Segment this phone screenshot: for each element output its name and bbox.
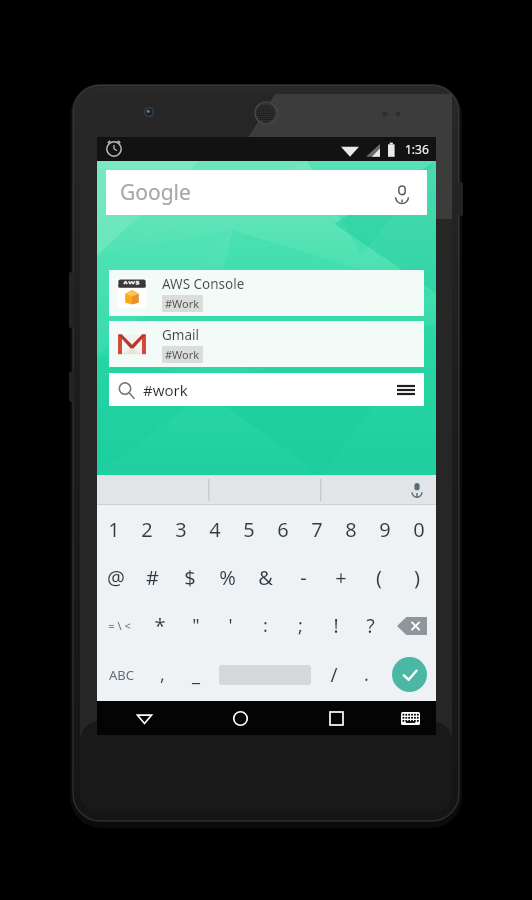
staticText: / [330, 662, 338, 688]
button[interactable]: % [208, 553, 246, 601]
button[interactable]: * [142, 601, 178, 650]
staticText: AWS Console [162, 275, 245, 293]
staticText: 0 [413, 516, 425, 543]
button[interactable]: @ [97, 553, 134, 601]
other: Menu [396, 380, 416, 400]
staticText: 6 [277, 516, 289, 543]
staticText: % [219, 564, 236, 591]
button[interactable]: Back [97, 701, 192, 735]
button[interactable]: Google [106, 170, 427, 215]
other: Voice search [391, 182, 413, 204]
button[interactable]: # [134, 553, 171, 601]
staticText: 1:36 [405, 141, 429, 157]
staticText: 9 [379, 516, 391, 543]
button[interactable]: 8 [334, 505, 368, 553]
staticText: 4 [209, 516, 221, 543]
button[interactable]: #work [109, 373, 424, 406]
button[interactable]: 6 [266, 505, 300, 553]
staticText: ) [414, 564, 420, 591]
button[interactable]: & [246, 553, 284, 601]
button[interactable]: Switch keyboard [384, 701, 436, 735]
button[interactable]: ; [283, 601, 318, 650]
staticText: Google [120, 178, 191, 207]
button[interactable]: " [178, 601, 213, 650]
staticText: _ [192, 662, 200, 687]
staticText: ; [298, 613, 303, 638]
staticText: ' [228, 613, 233, 638]
button[interactable]: 0 [402, 505, 436, 553]
staticText: @ [107, 564, 125, 591]
staticText: : [263, 613, 268, 638]
button[interactable]: + [322, 553, 360, 601]
staticText: ( [376, 564, 382, 591]
staticText: 2 [141, 516, 153, 543]
staticText: ABC [109, 666, 134, 684]
button[interactable]: ! [318, 601, 353, 650]
button[interactable]: Enter [383, 650, 436, 699]
button[interactable]: : [248, 601, 283, 650]
button[interactable]: ' [213, 601, 248, 650]
staticText: 1 [108, 516, 120, 543]
button[interactable]: 5 [232, 505, 266, 553]
button[interactable]: / [317, 650, 350, 699]
button[interactable]: Space [212, 650, 317, 699]
button[interactable]: = \ < [97, 601, 142, 650]
staticText: # [146, 564, 159, 591]
staticText: - [300, 564, 307, 591]
button[interactable]: ) [398, 553, 436, 601]
button[interactable]: AWS Console [109, 270, 424, 316]
button[interactable]: . [350, 650, 383, 699]
button[interactable]: ? [353, 601, 388, 650]
staticText: + [335, 564, 347, 591]
button[interactable]: 7 [300, 505, 334, 553]
staticText: = \ < [108, 618, 131, 633]
button[interactable]: ABC [97, 650, 146, 699]
button[interactable]: 2 [130, 505, 164, 553]
button[interactable]: Home [192, 701, 288, 735]
staticText: 5 [243, 516, 255, 543]
staticText: #Work [165, 347, 200, 362]
button[interactable]: 4 [198, 505, 232, 553]
staticText: * [154, 612, 166, 639]
staticText: 8 [345, 516, 357, 543]
button[interactable]: ( [360, 553, 398, 601]
button[interactable]: 3 [164, 505, 198, 553]
button[interactable]: _ [179, 650, 212, 699]
button[interactable]: , [146, 650, 179, 699]
staticText: . [364, 662, 369, 687]
staticText: Gmail [162, 326, 199, 344]
staticText: & [258, 564, 273, 591]
staticText: ! [333, 613, 339, 639]
staticText: 7 [311, 516, 323, 543]
staticText: ? [366, 613, 375, 639]
staticText: #work [143, 380, 188, 400]
staticText: 3 [175, 516, 187, 543]
staticText: , [160, 662, 165, 687]
button[interactable]: $ [171, 553, 208, 601]
staticText: #Work [165, 296, 200, 311]
button[interactable]: Delete [388, 601, 436, 650]
button[interactable]: 1 [97, 505, 130, 553]
staticText: $ [184, 564, 196, 591]
button[interactable]: Gmail [109, 321, 424, 367]
other: Voice input [410, 483, 424, 497]
button[interactable]: Recents [288, 701, 384, 735]
staticText: " [192, 613, 200, 638]
button[interactable]: - [284, 553, 322, 601]
button[interactable]: 9 [368, 505, 402, 553]
